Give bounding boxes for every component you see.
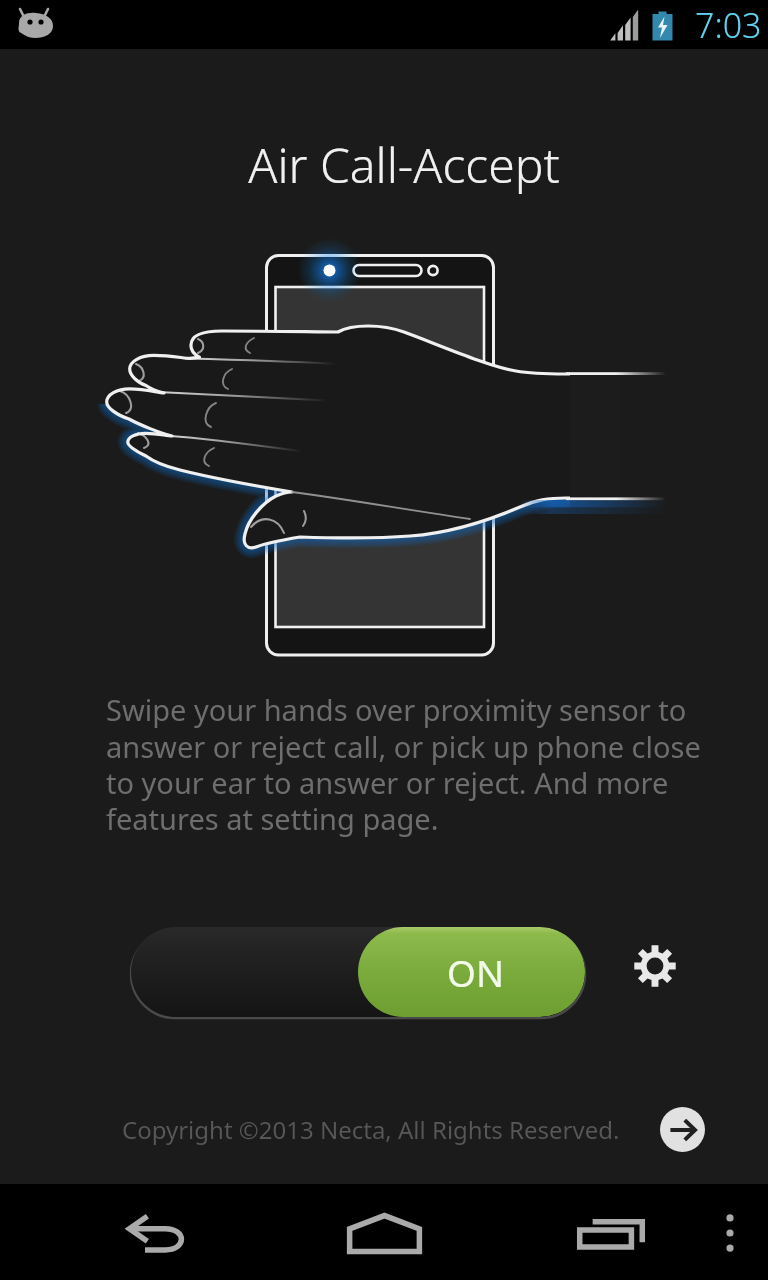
- staticText: Air Call-Accept: [20, 132, 768, 197]
- staticText: 7:03: [695, 2, 762, 48]
- staticText: Copyright ©2013 Necta, All Rights Reserv…: [122, 1113, 620, 1146]
- button[interactable]: More options: [690, 1184, 768, 1280]
- button[interactable]: Back: [0, 1184, 256, 1280]
- staticText: Swipe your hands over proximity sensor t…: [106, 690, 768, 838]
- button[interactable]: Next: [660, 1107, 705, 1152]
- button[interactable]: ON: [131, 927, 585, 1017]
- staticText: ON: [447, 947, 505, 997]
- button[interactable]: Settings: [623, 934, 687, 998]
- button[interactable]: Home: [256, 1184, 478, 1280]
- button[interactable]: Recent apps: [478, 1184, 690, 1280]
